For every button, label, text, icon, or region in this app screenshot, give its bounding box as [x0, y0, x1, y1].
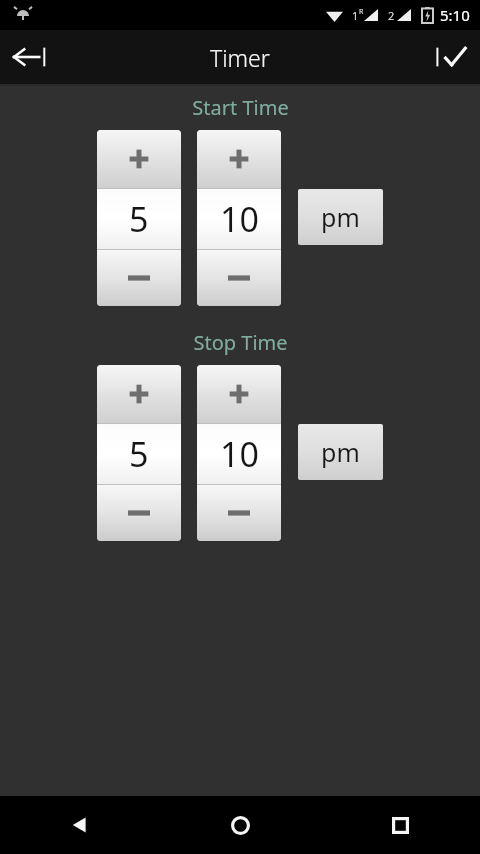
button[interactable]: 5 — [97, 189, 181, 249]
staticText: 1 — [352, 8, 359, 23]
staticText: 2 — [388, 8, 395, 23]
button[interactable]: 10 — [197, 424, 281, 484]
button[interactable]: pm — [298, 189, 383, 245]
staticText: 5:10 — [440, 5, 470, 25]
button[interactable]: Back — [0, 796, 160, 854]
button[interactable]: 5 — [97, 424, 181, 484]
button[interactable]: Decrease — [197, 250, 281, 306]
button[interactable]: Done — [422, 30, 480, 84]
staticText: Stop Time — [193, 329, 288, 356]
staticText: 5 — [129, 431, 149, 477]
staticText: pm — [321, 435, 360, 469]
button[interactable]: Increase — [97, 365, 181, 423]
button[interactable]: Increase — [197, 130, 281, 188]
button[interactable]: Increase — [197, 365, 281, 423]
staticText: 10 — [220, 196, 259, 242]
button[interactable]: 10 — [197, 189, 281, 249]
button[interactable]: Decrease — [197, 485, 281, 541]
button[interactable]: pm — [298, 424, 383, 480]
button[interactable]: Recent apps — [320, 796, 480, 854]
button[interactable]: Increase — [97, 130, 181, 188]
staticText: pm — [321, 200, 360, 234]
staticText: 10 — [220, 431, 259, 477]
button[interactable]: Home — [160, 796, 320, 854]
staticText: R — [359, 7, 364, 17]
button[interactable]: Back — [0, 30, 58, 84]
staticText: 5 — [129, 196, 149, 242]
button[interactable]: Decrease — [97, 485, 181, 541]
button[interactable]: Decrease — [97, 250, 181, 306]
staticText: Timer — [210, 42, 270, 73]
staticText: Start Time — [192, 94, 289, 121]
